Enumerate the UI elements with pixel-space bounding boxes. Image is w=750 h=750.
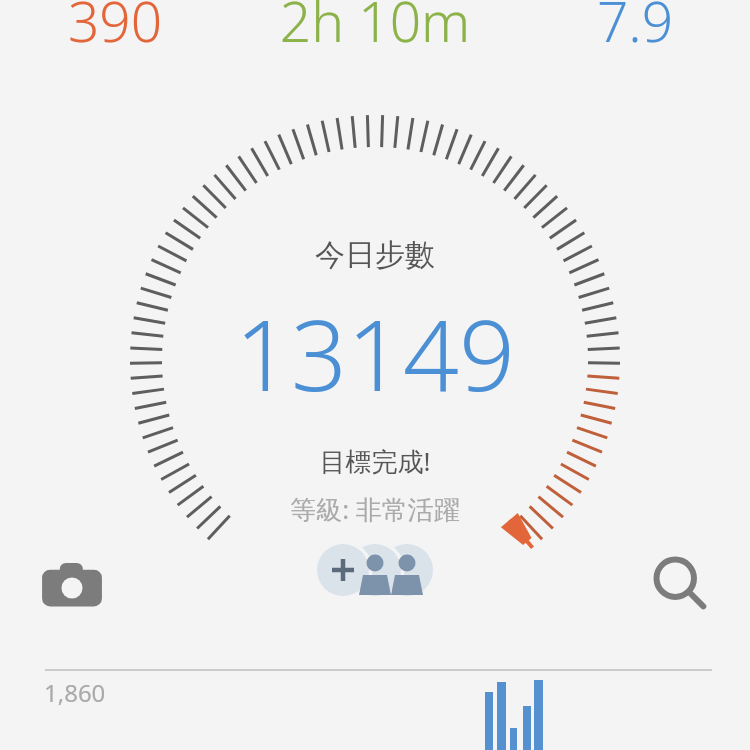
staticText: 1,860 <box>44 676 106 709</box>
button[interactable]: 2h 10m <box>265 0 485 55</box>
button[interactable]: Search <box>645 548 717 620</box>
button[interactable]: 390 <box>55 0 175 55</box>
staticText: 13149 <box>0 286 750 750</box>
button[interactable]: Friends <box>316 543 438 599</box>
staticText: 390 <box>55 0 175 55</box>
staticText: 今日步數 <box>0 236 750 750</box>
button[interactable]: Camera <box>38 552 106 620</box>
staticText: 7.9 <box>575 0 695 55</box>
staticText: 等級: 非常活躍 <box>0 491 750 750</box>
button[interactable]: 7.9 <box>575 0 695 55</box>
staticText: 目標完成! <box>0 443 750 750</box>
staticText: 2h 10m <box>265 0 485 55</box>
